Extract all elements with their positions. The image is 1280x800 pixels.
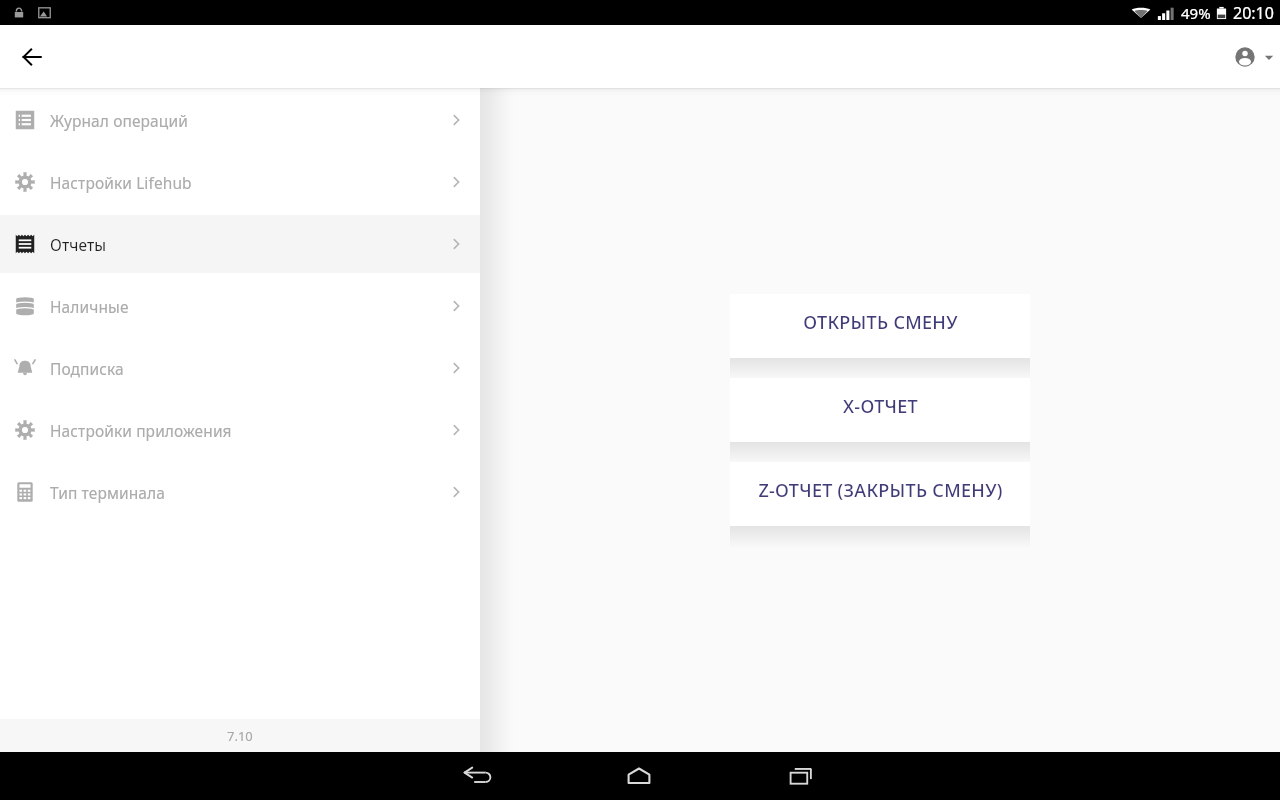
staticText: X-ОТЧЕТ — [843, 394, 918, 419]
button[interactable]: Z-ОТЧЕТ (ЗАКРЫТЬ СМЕНУ) — [730, 462, 1030, 526]
button[interactable]: Back — [398, 752, 558, 800]
staticText: 20:10 — [1233, 2, 1274, 24]
staticText: ОТКРЫТЬ СМЕНУ — [803, 310, 958, 335]
button[interactable]: Настройки Lifehub — [0, 153, 480, 211]
staticText: Журнал операций — [50, 110, 188, 131]
staticText: Подписка — [50, 358, 124, 379]
staticText: 7.10 — [227, 727, 253, 745]
button[interactable]: Настройки приложения — [0, 401, 480, 459]
staticText: Настройки приложения — [50, 420, 232, 441]
button[interactable]: Отчеты — [0, 215, 480, 273]
button[interactable]: Тип терминала — [0, 463, 480, 521]
button[interactable]: Recents — [720, 752, 882, 800]
staticText: 49% — [1181, 3, 1211, 23]
button[interactable]: Back — [12, 37, 52, 77]
button[interactable]: Подписка — [0, 339, 480, 397]
staticText: Отчеты — [50, 234, 107, 255]
staticText: Z-ОТЧЕТ (ЗАКРЫТЬ СМЕНУ) — [758, 478, 1003, 503]
button[interactable]: X-ОТЧЕТ — [730, 378, 1030, 442]
button[interactable]: Home — [558, 752, 720, 800]
button[interactable]: Account — [1226, 38, 1280, 76]
staticText: Наличные — [50, 296, 129, 317]
staticText: Тип терминала — [50, 482, 165, 503]
button[interactable]: Наличные — [0, 277, 480, 335]
button[interactable]: Журнал операций — [0, 91, 480, 149]
staticText: Настройки Lifehub — [50, 172, 192, 193]
button[interactable]: ОТКРЫТЬ СМЕНУ — [730, 294, 1030, 358]
